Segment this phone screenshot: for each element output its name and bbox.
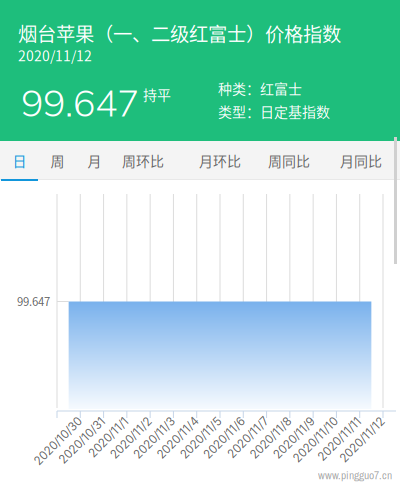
staticText: 月环比 [199,150,241,171]
staticText: 2020/11/11 [313,436,369,449]
staticText: 2020/11/2 [106,436,159,449]
staticText: 周 [50,150,64,171]
staticText: 周同比 [268,150,310,171]
staticText: 月同比 [340,150,382,171]
staticText: 2020/11/12 [334,436,392,449]
staticText: www.pingguo7.cn [318,467,392,483]
staticText: 2020/11/10 [288,436,346,449]
staticText: 持平 [143,84,171,104]
button[interactable]: 周 [39,141,76,180]
staticText: 2020/11/8 [246,436,299,449]
staticText: 2020/11/7 [224,436,276,449]
button[interactable]: 月 [76,141,113,180]
staticText: 2020/11/3 [130,436,183,449]
staticText: 周环比 [122,150,164,171]
staticText: 2020/11/9 [269,436,322,449]
staticText: 2020/10/30 [28,436,90,449]
button[interactable]: 月同比 [331,141,391,180]
button[interactable]: 周环比 [113,141,173,180]
staticText: 2020/10/31 [53,436,113,449]
staticText: 99.647 [17,293,50,309]
button[interactable]: 周同比 [259,141,319,180]
staticText: 种类：红富士 [218,78,302,98]
staticText: 99.647 [21,79,139,126]
staticText: 2020/11/1 [85,436,136,449]
staticText: 2020/11/6 [200,436,253,449]
staticText: 2020/11/5 [176,436,229,449]
staticText: 日 [12,150,26,171]
button[interactable]: 月环比 [190,141,250,180]
staticText: 类型：日定基指数 [218,101,330,121]
staticText: 月 [87,150,101,171]
button[interactable]: 日 [0,141,39,180]
staticText: 2020/11/12 [18,45,92,65]
staticText: 2020/11/4 [153,436,206,449]
staticText: 烟台苹果（一、二级红富士）价格指数 [18,19,341,47]
